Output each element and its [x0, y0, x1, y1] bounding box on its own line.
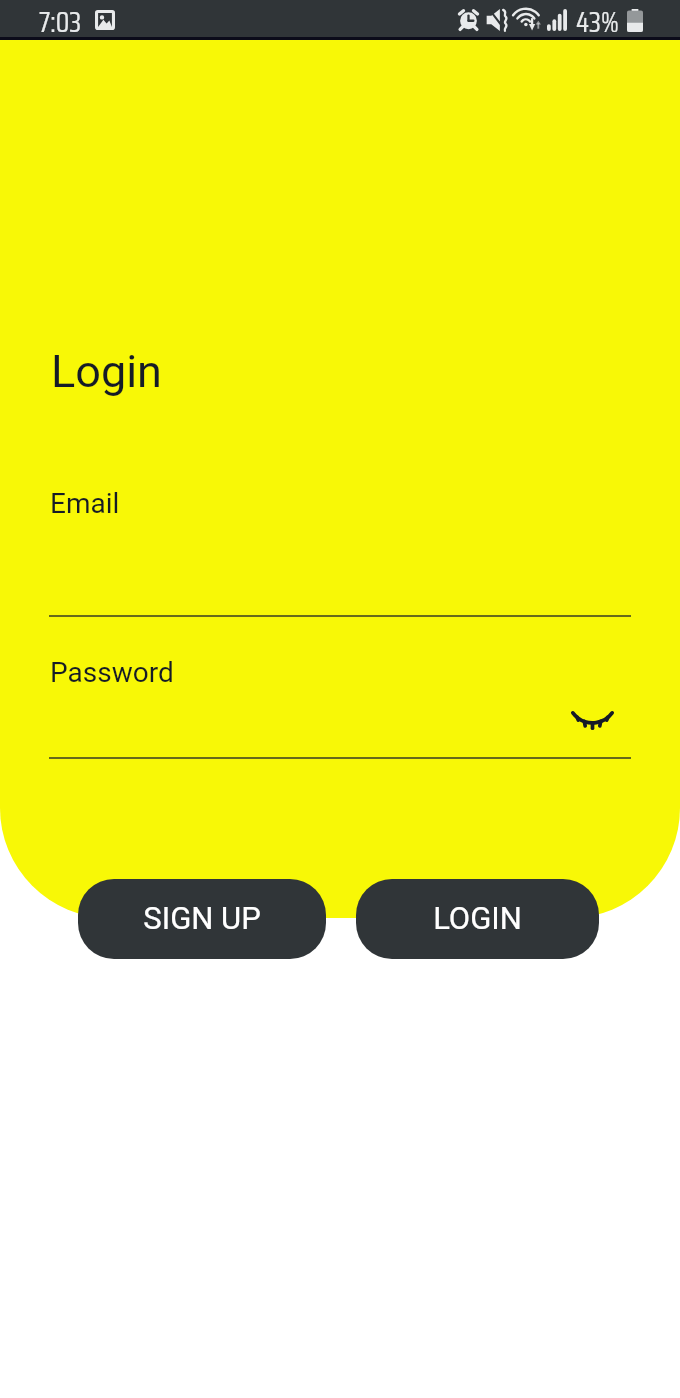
- staticText: 43%: [576, 0, 619, 40]
- staticText: SIGN UP: [143, 900, 261, 936]
- staticText: Email: [50, 487, 120, 520]
- button[interactable]: SIGN UP: [78, 879, 326, 959]
- button[interactable]: Toggle password visibility: [551, 692, 635, 748]
- staticText: LOGIN: [433, 900, 522, 936]
- button[interactable]: LOGIN: [356, 879, 599, 959]
- staticText: Password: [50, 656, 174, 689]
- staticText: Login: [51, 345, 162, 398]
- staticText: 7:03: [39, 0, 82, 40]
